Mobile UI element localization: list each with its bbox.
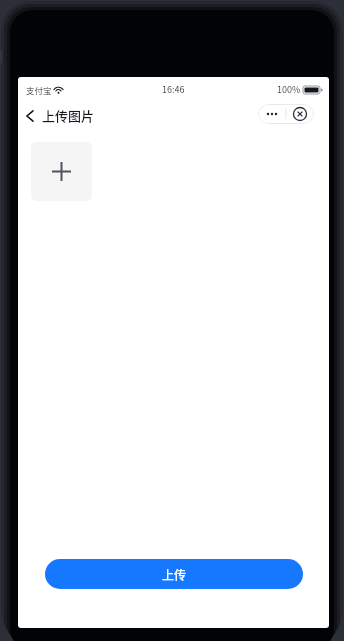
staticText: 100% (277, 83, 301, 96)
button[interactable] (19, 105, 40, 127)
staticText: 上传图片 (42, 106, 95, 125)
button[interactable]: 上传 (45, 559, 303, 589)
staticText: 支付宝 (26, 84, 52, 96)
staticText: 上传 (162, 566, 187, 583)
button[interactable] (258, 104, 314, 124)
staticText: 16:46 (162, 83, 185, 96)
button[interactable] (31, 142, 92, 201)
